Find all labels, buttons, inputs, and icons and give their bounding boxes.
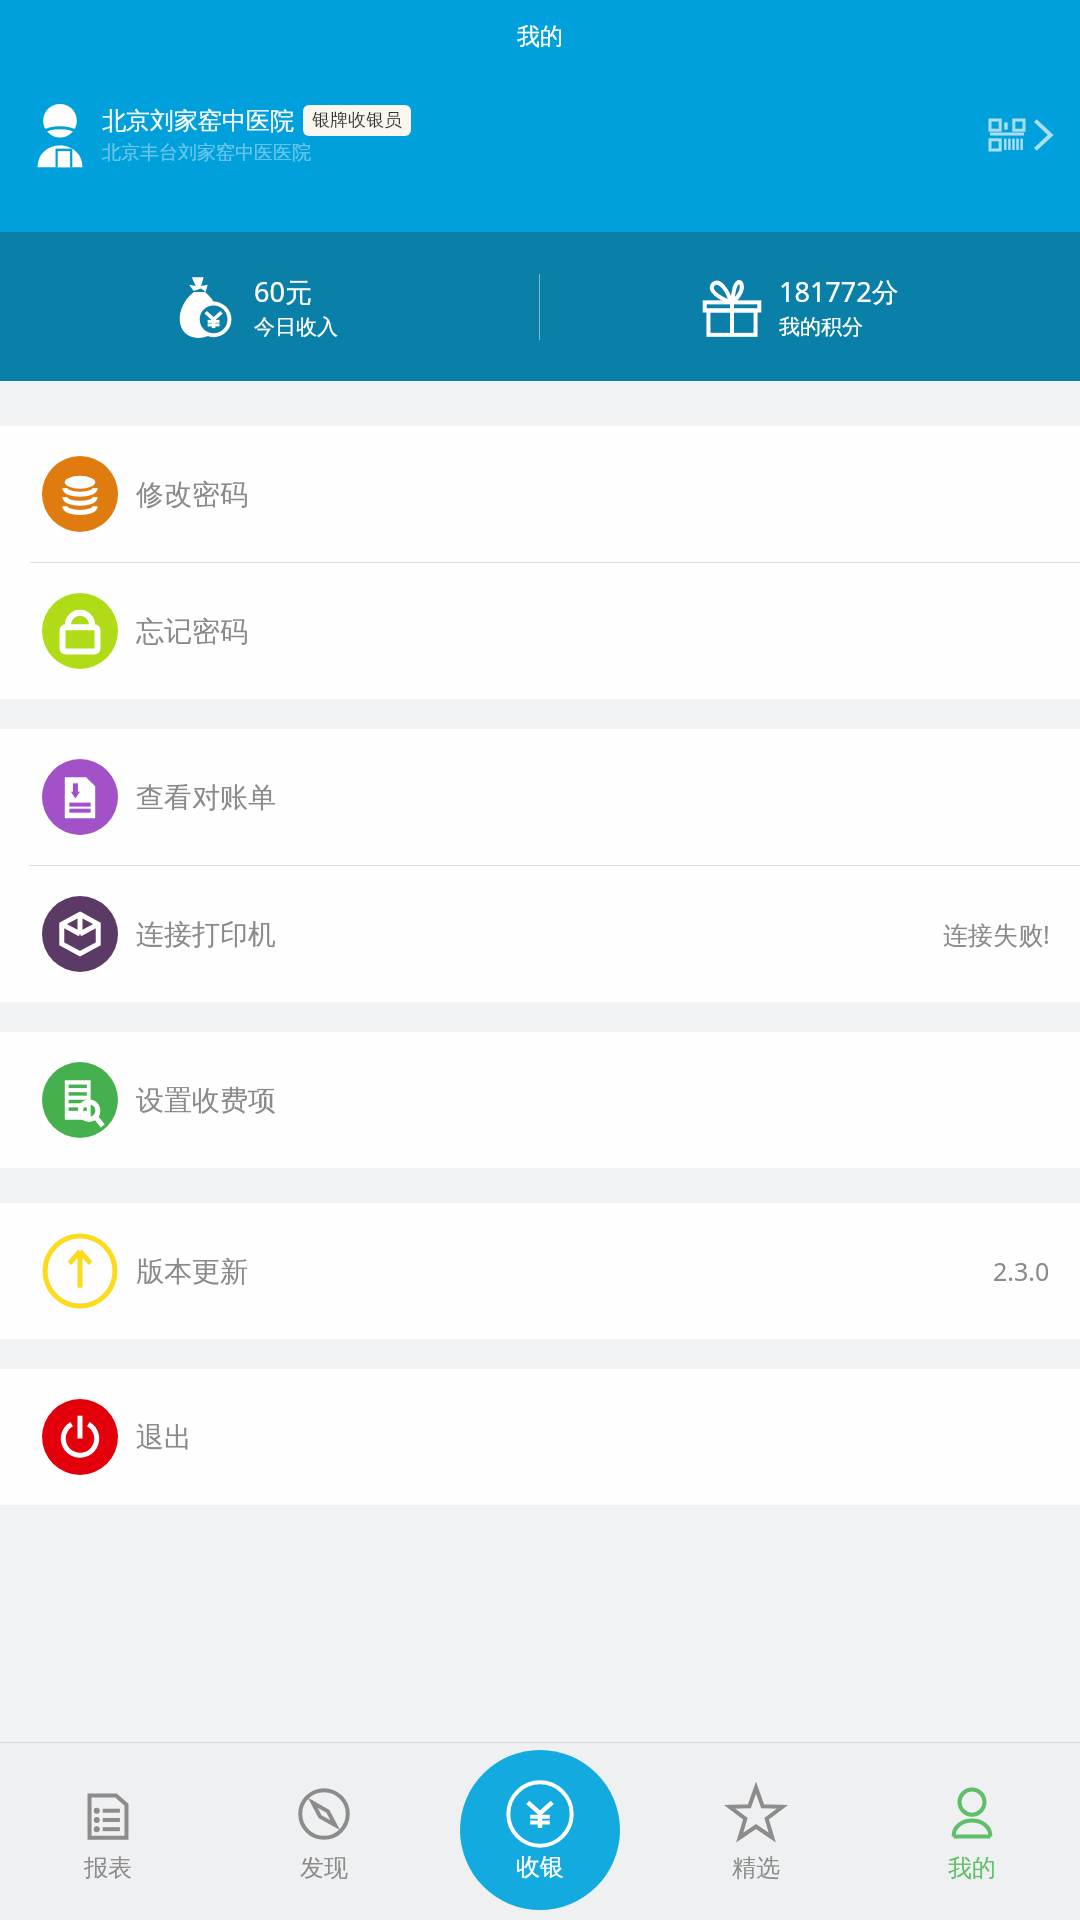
button[interactable]: 忘记密码 xyxy=(0,563,1080,699)
staticText: 发现 xyxy=(300,1853,348,1883)
button[interactable]: 设置收费项 xyxy=(0,1032,1080,1168)
staticText: 我的积分 xyxy=(779,314,863,340)
staticText: 设置收费项 xyxy=(136,1083,276,1118)
staticText: 版本更新 xyxy=(136,1254,248,1289)
button[interactable]: 北京刘家窑中医院 xyxy=(0,92,1080,178)
button[interactable]: 收银 xyxy=(460,1750,620,1910)
staticText: 181772分 xyxy=(779,273,899,310)
staticText: 60元 xyxy=(254,273,312,310)
button[interactable]: 连接打印机 xyxy=(0,866,1080,1002)
staticText: 2.3.0 xyxy=(993,1254,1050,1288)
staticText: 今日收入 xyxy=(254,314,338,340)
staticText: 北京刘家窑中医院 xyxy=(102,106,294,136)
button[interactable]: 报表 xyxy=(0,1743,216,1920)
staticText: 精选 xyxy=(732,1853,780,1883)
staticText: 查看对账单 xyxy=(136,780,276,815)
staticText: 退出 xyxy=(136,1420,192,1455)
button[interactable]: 退出 xyxy=(0,1369,1080,1505)
button[interactable]: 60元 xyxy=(0,232,539,381)
button[interactable]: 我的 xyxy=(864,1743,1080,1920)
button[interactable]: 181772分 xyxy=(540,232,1080,381)
staticText: 连接打印机 xyxy=(136,917,276,952)
button[interactable]: 扫码 xyxy=(990,92,1080,178)
staticText: 收银 xyxy=(516,1852,564,1882)
staticText: 修改密码 xyxy=(136,477,248,512)
button[interactable]: 发现 xyxy=(216,1743,432,1920)
staticText: 我的 xyxy=(517,22,563,51)
staticText: 我的 xyxy=(948,1853,996,1883)
staticText: 北京丰台刘家窑中医医院 xyxy=(102,141,311,165)
staticText: 银牌收银员 xyxy=(312,109,402,132)
staticText: 报表 xyxy=(84,1853,132,1883)
button[interactable]: 版本更新 xyxy=(0,1203,1080,1339)
staticText: 忘记密码 xyxy=(136,614,248,649)
button[interactable]: 修改密码 xyxy=(0,426,1080,562)
button[interactable]: 精选 xyxy=(648,1743,864,1920)
button[interactable]: 查看对账单 xyxy=(0,729,1080,865)
staticText: 连接失败! xyxy=(943,917,1050,951)
